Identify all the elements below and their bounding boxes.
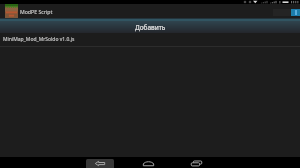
button[interactable]: MiniMap_Mod_MrSoldo v1.0.js — [0, 33, 300, 46]
button[interactable]: Добавить — [0, 21, 300, 33]
button[interactable]: ModPE Script — [5, 4, 53, 18]
button[interactable]: Recent apps — [182, 159, 210, 168]
button[interactable]: Home — [134, 159, 162, 168]
staticText: ModPE Script — [20, 8, 53, 15]
button[interactable]: Back — [86, 159, 114, 168]
staticText: Добавить — [135, 23, 166, 32]
staticText: MiniMap_Mod_MrSoldo v1.0.js — [3, 36, 75, 43]
button[interactable]: Info — [273, 9, 300, 16]
